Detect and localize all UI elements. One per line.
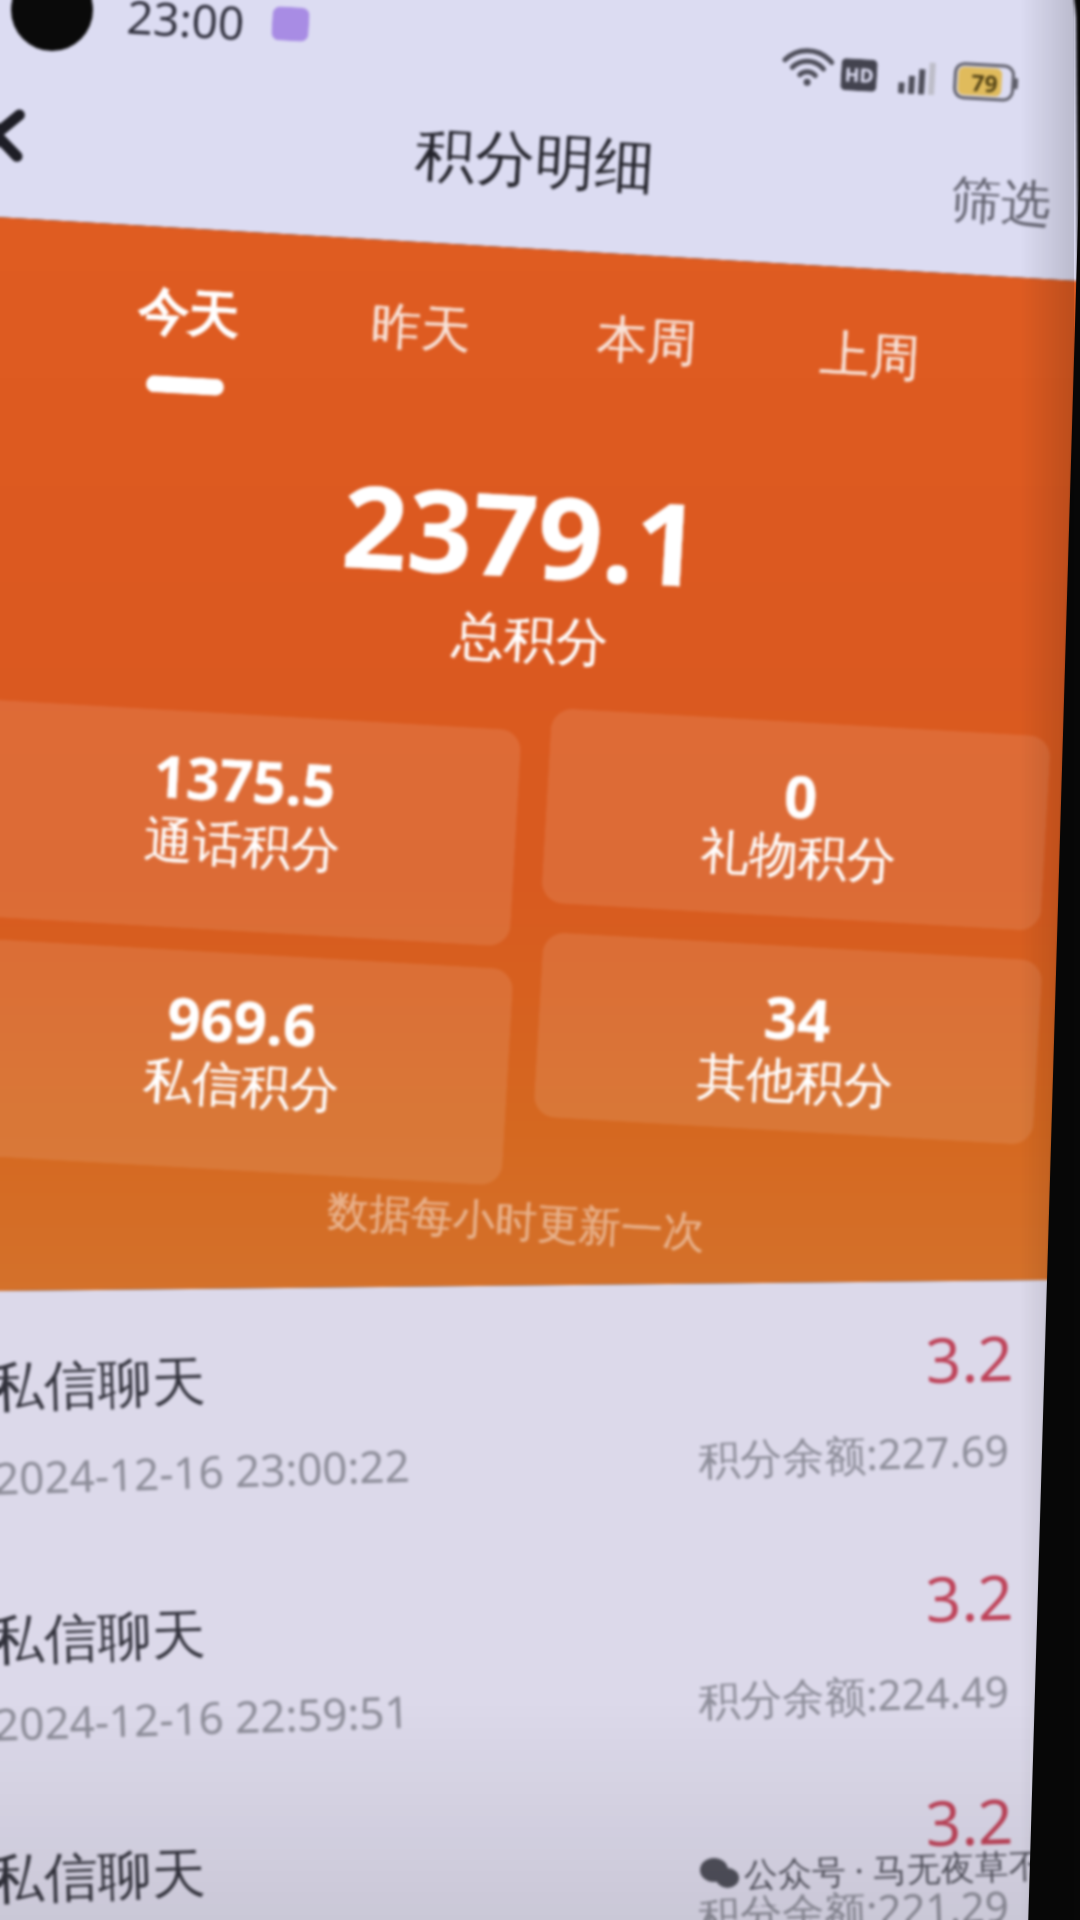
staticText: 2024-12-16 22:59:51 — [0, 1676, 555, 1760]
staticText: 积分余额:221.29 — [588, 1876, 1010, 1920]
staticText: 2024-12-16 23:00:22 — [0, 1430, 555, 1514]
button[interactable] — [0, 1520, 1020, 1770]
staticText: 23:00 — [125, 0, 247, 51]
staticText: 1375.5 — [151, 735, 338, 824]
staticText: 积分明细 — [413, 116, 657, 206]
staticText: 3.2 — [792, 1778, 1014, 1864]
staticText: 筛选 — [949, 168, 1053, 237]
button[interactable]: 筛选 — [924, 160, 1078, 244]
button[interactable] — [0, 698, 522, 947]
button[interactable]: Back — [0, 80, 62, 190]
staticText: 私信积分 — [141, 1049, 341, 1123]
staticText: 昨天 — [369, 294, 473, 363]
staticText: 积分余额:227.69 — [588, 1420, 1010, 1498]
staticText: 其他积分 — [695, 1045, 895, 1119]
button[interactable]: 昨天 — [324, 290, 518, 366]
staticText: 969.6 — [165, 977, 319, 1064]
staticText: 0 — [782, 755, 820, 836]
staticText: 私信聊天 — [0, 1832, 451, 1920]
staticText: 公众号 · 马无夜草不肥 — [743, 1841, 1045, 1907]
staticText: 3.2 — [792, 1554, 1014, 1640]
staticText: 数据每小时更新一次 — [326, 1185, 706, 1260]
staticText: 私信聊天 — [0, 1593, 451, 1691]
button[interactable] — [0, 937, 514, 1186]
staticText: 2379.1 — [338, 445, 705, 620]
staticText: 79 — [970, 66, 999, 99]
button[interactable]: 本周 — [550, 303, 744, 379]
button[interactable]: 今天 — [91, 276, 285, 352]
button[interactable] — [541, 708, 1051, 931]
staticText: 私信聊天 — [0, 1340, 451, 1438]
button[interactable] — [0, 1759, 1020, 1920]
staticText: 礼物积分 — [698, 820, 898, 894]
staticText: 今天 — [136, 280, 240, 349]
button[interactable]: 上周 — [773, 318, 967, 394]
button[interactable] — [0, 1267, 1020, 1517]
staticText: 3.2 — [792, 1315, 1014, 1401]
staticText: 本周 — [595, 307, 699, 376]
button[interactable] — [533, 932, 1043, 1145]
staticText: 总积分 — [450, 603, 610, 677]
staticText: HD — [844, 61, 875, 89]
staticText: 通话积分 — [142, 809, 342, 883]
staticText: 积分余额:224.49 — [588, 1661, 1010, 1739]
staticText: 上周 — [818, 322, 922, 391]
staticText: 34 — [762, 976, 833, 1059]
